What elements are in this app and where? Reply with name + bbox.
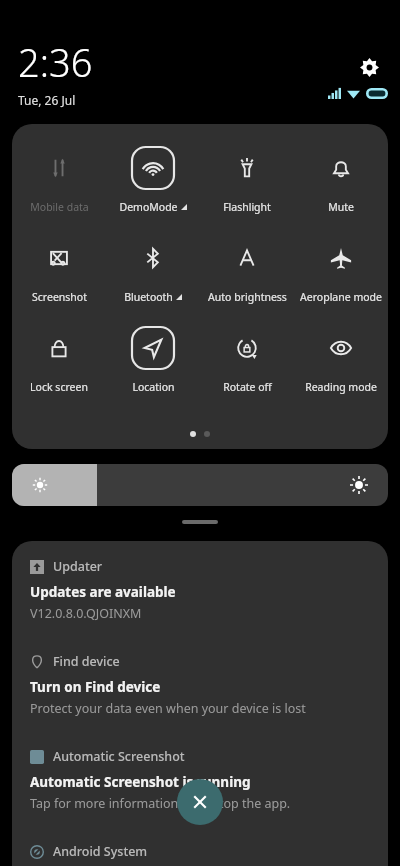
button[interactable]: Location (106, 321, 200, 411)
staticText: Aeroplane mode (300, 290, 382, 304)
button[interactable]: Android System (12, 826, 388, 862)
staticText: DemoMode (119, 200, 178, 214)
button[interactable]: Lock screen (12, 321, 106, 411)
staticText: Reading mode (305, 380, 377, 394)
staticText: Mute (328, 200, 354, 214)
staticText: Auto brightness (208, 290, 287, 304)
button[interactable]: Updater (12, 541, 388, 636)
button[interactable]: Auto brightness (200, 231, 294, 321)
button[interactable]: DemoMode (106, 141, 200, 231)
staticText: Turn on Find device (30, 678, 161, 696)
button[interactable]: Expand (182, 520, 218, 524)
staticText: Android System (53, 843, 148, 860)
button[interactable]: Settings (352, 50, 386, 84)
button[interactable]: Bluetooth (106, 231, 200, 321)
button[interactable]: Aeroplane mode (294, 231, 388, 321)
staticText: Find device (53, 653, 120, 670)
button[interactable]: Mute (294, 141, 388, 231)
button[interactable]: Flashlight (200, 141, 294, 231)
staticText: Bluetooth (124, 290, 173, 304)
staticText: V12.0.8.0.QJOINXM (30, 605, 142, 622)
button[interactable]: Rotate off (200, 321, 294, 411)
button[interactable]: Close notifications (177, 779, 223, 825)
button[interactable]: Mobile data (12, 141, 106, 231)
staticText: Automatic Screenshot (53, 748, 185, 765)
button[interactable]: Reading mode (294, 321, 388, 411)
staticText: Updates are available (30, 583, 176, 601)
staticText: Rotate off (223, 380, 272, 394)
button[interactable]: Screenshot (12, 231, 106, 321)
staticText: Protect your data even when your device … (30, 700, 306, 717)
staticText: Screenshot (32, 290, 87, 304)
staticText: 2:36 (18, 36, 93, 88)
staticText: Automatic Screenshot is running (30, 773, 251, 791)
button[interactable]: Find device (12, 636, 388, 731)
button[interactable]: Brightness (12, 464, 388, 506)
staticText: Lock screen (30, 380, 88, 394)
button[interactable]: Automatic Screenshot (12, 731, 388, 826)
staticText: Tap for more information or to stop the … (30, 795, 291, 812)
staticText: Updater (53, 558, 103, 575)
staticText: Mobile data (30, 200, 89, 214)
staticText: Tue, 26 Jul (18, 92, 76, 108)
staticText: Flashlight (223, 200, 271, 214)
staticText: Location (132, 380, 175, 394)
